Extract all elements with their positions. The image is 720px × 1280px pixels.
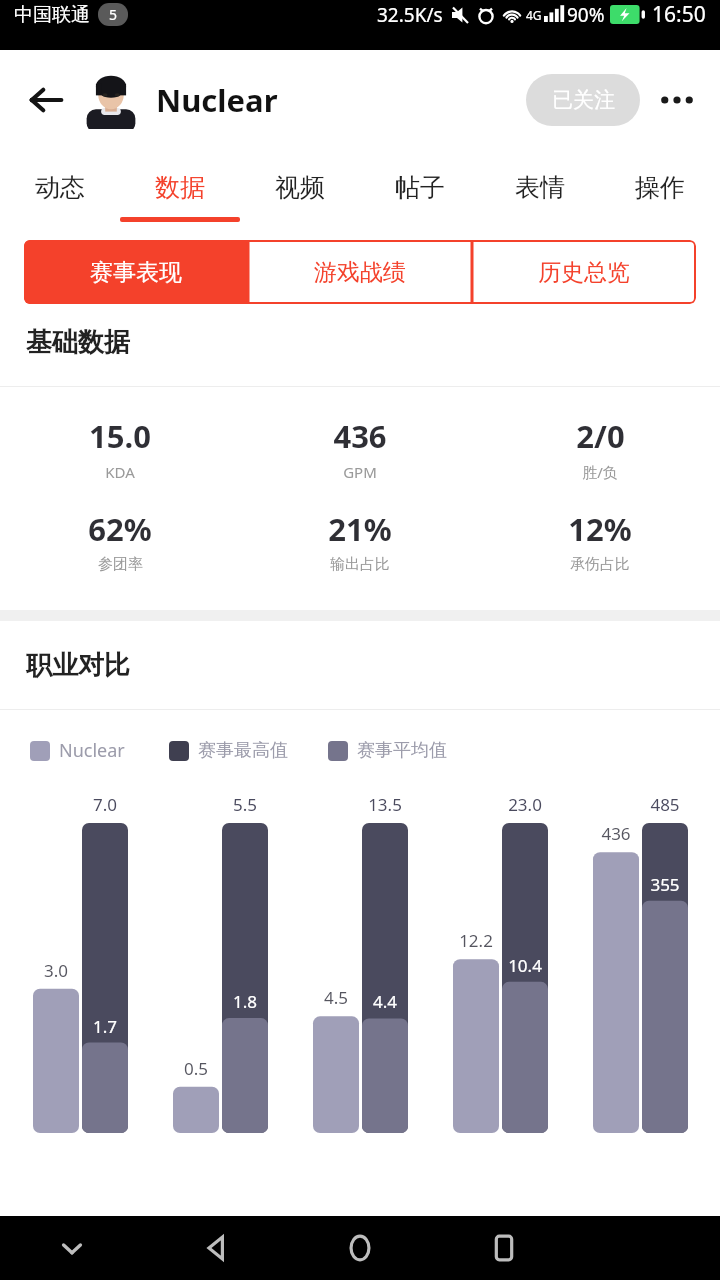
staticText: 1.7 [82, 1015, 128, 1038]
staticText: 21% [328, 508, 392, 550]
staticText: Nuclear [156, 79, 278, 121]
staticText: 5.5 [214, 793, 276, 816]
button[interactable]: 已关注 [526, 74, 640, 126]
staticText: 0.5 [163, 1057, 229, 1080]
staticText: 15.0 [89, 415, 151, 457]
staticText: 13.5 [354, 793, 416, 816]
button[interactable]: 视频 [240, 150, 360, 236]
button[interactable]: Home [288, 1216, 432, 1280]
button[interactable]: 历史总览 [472, 240, 696, 304]
staticText: 4.5 [303, 986, 369, 1009]
staticText: 355 [642, 873, 688, 896]
button[interactable]: 帖子 [360, 150, 480, 236]
staticText: 基础数据 [26, 326, 130, 359]
staticText: 承伤占比 [570, 555, 630, 574]
staticText: 7.0 [74, 793, 136, 816]
staticText: 32.5K/s [377, 2, 443, 28]
staticText: 表情 [515, 172, 565, 203]
button[interactable]: 操作 [600, 150, 720, 236]
button[interactable]: Recent apps [432, 1216, 576, 1280]
staticText: 12% [568, 508, 632, 550]
staticText: 436 [583, 822, 649, 845]
button[interactable]: 赛事表现 [24, 240, 248, 304]
staticText: 10.4 [502, 954, 548, 977]
staticText: 历史总览 [538, 258, 630, 287]
staticText: Nuclear [59, 738, 125, 763]
staticText: 5 [109, 5, 118, 24]
staticText: 赛事表现 [90, 258, 182, 287]
staticText: 职业对比 [26, 649, 130, 682]
button[interactable]: 表情 [480, 150, 600, 236]
staticText: 视频 [275, 172, 325, 203]
staticText: 23.0 [494, 793, 556, 816]
button[interactable]: Back [144, 1216, 288, 1280]
staticText: 帖子 [395, 172, 445, 203]
button[interactable]: More options [654, 77, 700, 123]
staticText: 参团率 [98, 555, 143, 574]
staticText: 赛事最高值 [198, 739, 288, 762]
staticText: 动态 [35, 172, 85, 203]
button[interactable]: 数据 [120, 150, 240, 236]
staticText: 16:50 [652, 0, 706, 29]
staticText: 1.8 [222, 990, 268, 1013]
staticText: 3.0 [23, 959, 89, 982]
staticText: 中国联通 [14, 3, 90, 27]
staticText: 12.2 [443, 929, 509, 952]
staticText: 4G [526, 7, 542, 23]
staticText: 数据 [155, 172, 205, 203]
staticText: 游戏战绩 [314, 258, 406, 287]
staticText: GPM [343, 462, 377, 482]
staticText: 操作 [635, 172, 685, 203]
staticText: 胜/负 [582, 462, 618, 482]
button[interactable]: Hide keyboard [0, 1216, 144, 1280]
staticText: 2/0 [576, 415, 625, 457]
staticText: 62% [88, 508, 152, 550]
button[interactable]: 游戏战绩 [248, 240, 472, 304]
staticText: 赛事平均值 [357, 739, 447, 762]
button[interactable]: 动态 [0, 150, 120, 236]
staticText: 90% [567, 2, 605, 28]
staticText: 输出占比 [330, 555, 390, 574]
staticText: 已关注 [552, 87, 615, 113]
button[interactable]: Back [22, 76, 70, 124]
staticText: 436 [333, 415, 387, 457]
staticText: 4.4 [362, 990, 408, 1013]
staticText: KDA [105, 462, 135, 482]
staticText: 485 [634, 793, 696, 816]
